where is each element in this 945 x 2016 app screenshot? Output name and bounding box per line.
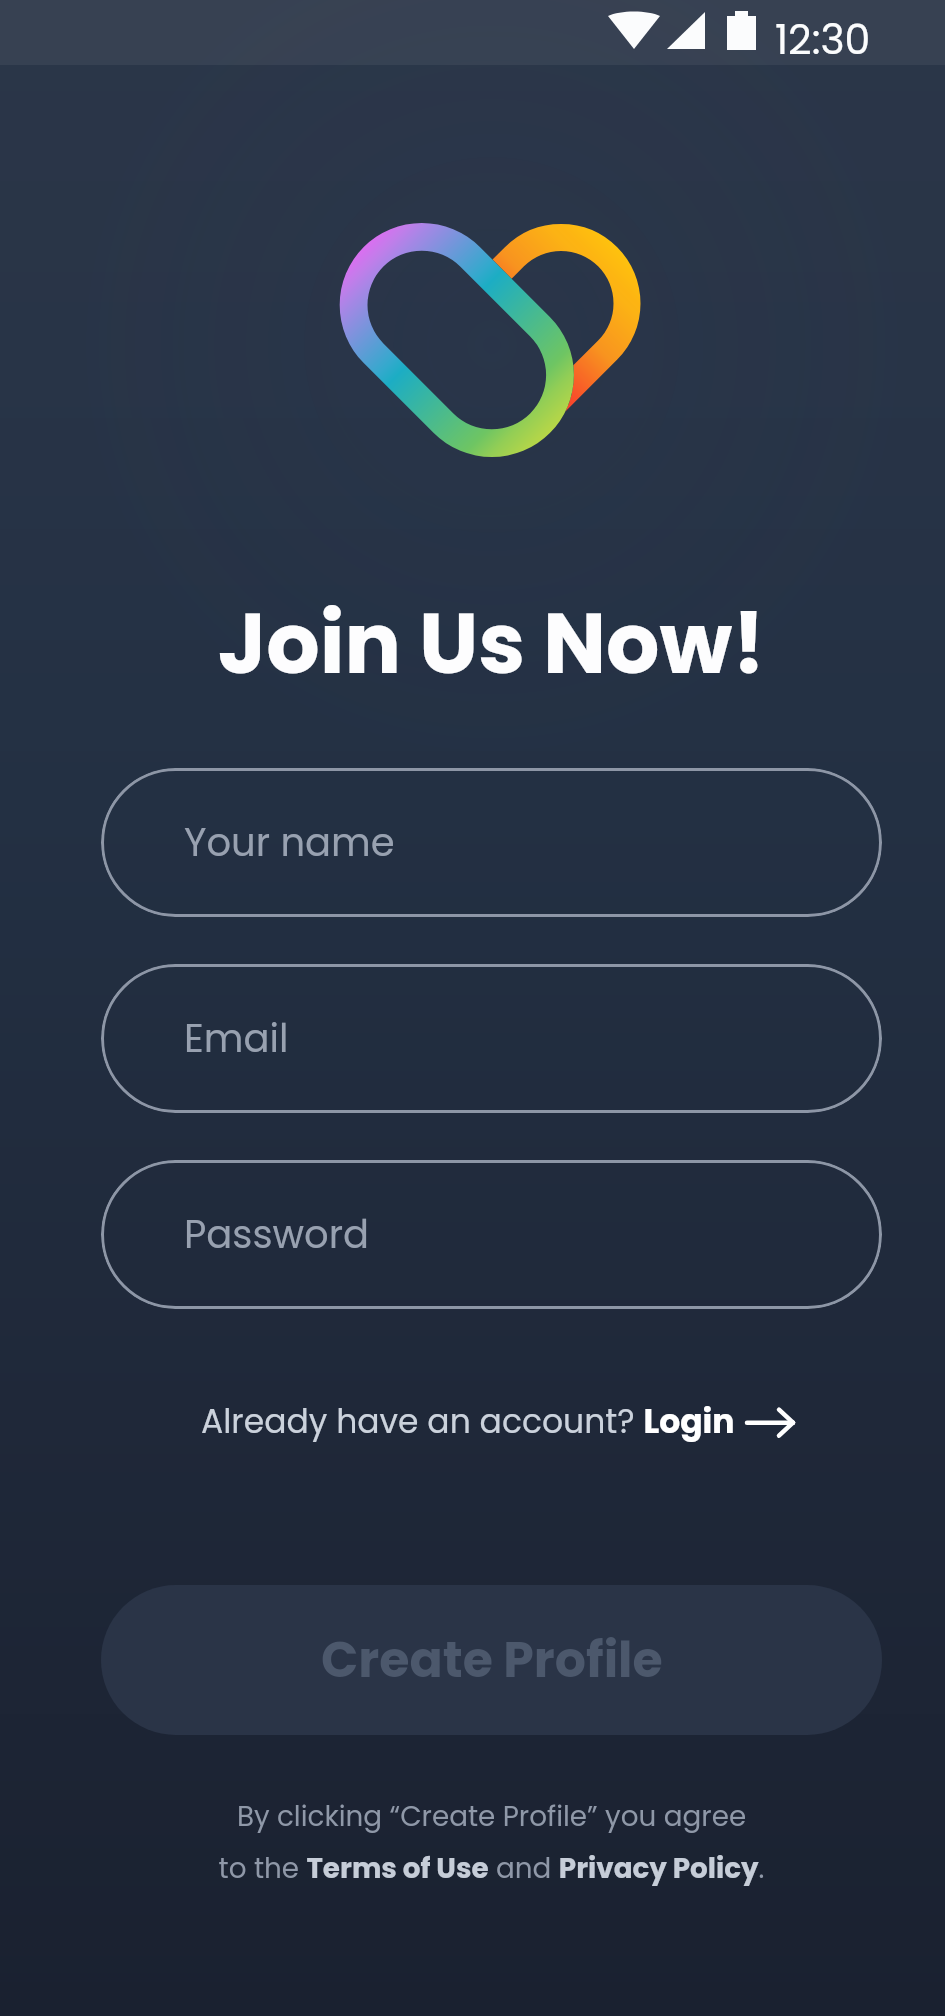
button[interactable]: Password (101, 1160, 882, 1309)
button[interactable]: Create Profile (101, 1585, 882, 1735)
staticText: By clicking “Create Profile” you agree t… (19, 1797, 945, 1888)
staticText: Email (184, 1012, 289, 1066)
staticText: Already have an account? Login (201, 1398, 735, 1444)
staticText: Your name (184, 816, 395, 870)
staticText: 12:30 (775, 11, 871, 68)
staticText: Password (184, 1208, 370, 1262)
button[interactable]: Your name (101, 768, 882, 917)
button[interactable]: Already have an account? Login (201, 1398, 793, 1444)
button[interactable]: Email (101, 964, 882, 1113)
staticText: Join Us Now! (19, 585, 945, 703)
staticText: Create Profile (321, 1626, 663, 1695)
